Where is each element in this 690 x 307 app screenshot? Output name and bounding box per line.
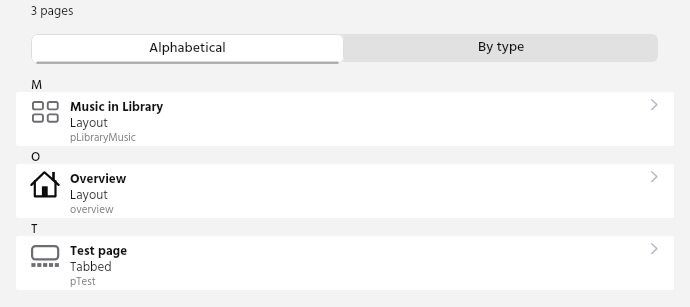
staticText: M [31,75,43,93]
staticText: Test page [70,241,128,262]
staticText: 3 pages [31,1,74,22]
staticText: pTest [70,273,96,290]
staticText: Layout [70,113,109,134]
staticText: Layout [70,185,109,206]
button[interactable]: Overview [16,164,674,218]
staticText: Alphabetical [149,37,226,59]
staticText: Tabbed [70,257,112,278]
button[interactable]: By type [345,34,658,62]
staticText: Music in Library [70,97,164,118]
staticText: overview [70,201,114,218]
staticText: T [31,219,38,237]
staticText: pLibraryMusic [70,129,136,146]
staticText: By type [478,36,525,58]
other: Open Music in Library [630,92,674,146]
button[interactable]: Music in Library [16,92,674,146]
button[interactable]: Alphabetical [31,34,344,64]
other: Open Overview [630,164,674,218]
staticText: O [31,147,41,165]
other: Open Test page [630,236,674,290]
staticText: Overview [70,169,127,190]
button[interactable]: Test page [16,236,674,290]
